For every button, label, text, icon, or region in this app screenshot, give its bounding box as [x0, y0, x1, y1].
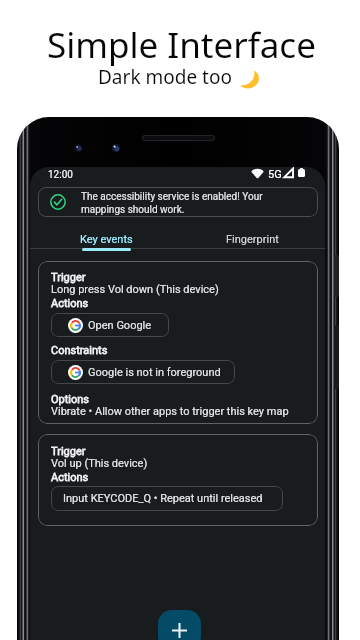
staticText: Dark mode too — [98, 64, 232, 90]
staticText: Open Google — [88, 319, 152, 332]
staticText: Options — [51, 393, 90, 406]
button[interactable]: The accessibility service is enabled! Yo… — [38, 187, 318, 217]
button[interactable] — [38, 434, 318, 526]
button[interactable]: Google is not in foreground — [51, 360, 235, 384]
staticText: Vol up (This device) — [51, 457, 148, 470]
staticText: Actions — [51, 297, 89, 310]
staticText: The accessibility service is enabled! Yo… — [81, 191, 263, 215]
button[interactable]: Key events — [33, 225, 179, 251]
staticText: Actions — [51, 471, 89, 484]
staticText: Trigger — [51, 445, 86, 458]
staticText: Input KEYCODE_Q • Repeat until released — [63, 492, 263, 505]
button[interactable]: Fingerprint — [179, 225, 325, 251]
staticText: Fingerprint — [226, 233, 279, 246]
staticText: Long press Vol down (This device) — [51, 283, 219, 296]
staticText: 12:00 — [48, 169, 73, 181]
button[interactable]: Input KEYCODE_Q • Repeat until released — [51, 486, 283, 511]
staticText: Constraints — [51, 344, 108, 357]
staticText: Vibrate • Allow other apps to trigger th… — [51, 405, 289, 418]
staticText: Trigger — [51, 271, 86, 284]
staticText: Simple Interface — [47, 21, 316, 69]
button[interactable]: Add key map — [158, 610, 201, 640]
staticText: 5G — [268, 168, 282, 181]
button[interactable]: Open Google — [51, 313, 169, 337]
staticText: Key events — [80, 233, 133, 246]
button[interactable] — [38, 261, 318, 424]
staticText: Google is not in foreground — [88, 366, 221, 379]
